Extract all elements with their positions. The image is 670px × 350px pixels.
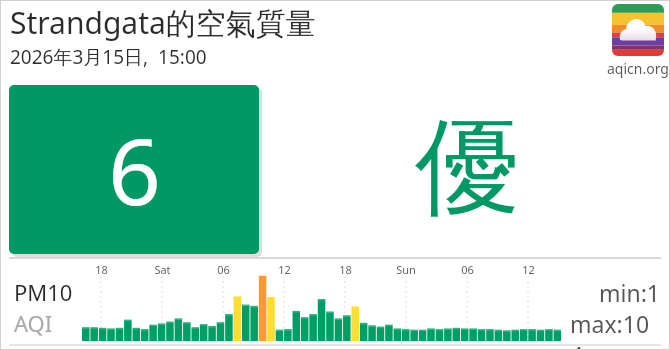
button[interactable]: PM10 AQI history chart — [0, 0, 670, 350]
staticText: 12 — [278, 262, 291, 277]
staticText: AQI — [14, 308, 53, 338]
staticText: 6 — [108, 107, 161, 232]
staticText: max:104 — [570, 308, 660, 350]
staticText: Strandgata的空氣質量 — [10, 2, 316, 43]
staticText: 2026年3月15日, 15:00 — [10, 44, 207, 70]
staticText: 18 — [95, 262, 108, 277]
button[interactable]: aqicn.org — [607, 4, 669, 78]
staticText: min:1 — [599, 277, 660, 308]
staticText: aqicn.org — [607, 59, 669, 78]
staticText: 06 — [461, 262, 474, 277]
staticText: 12 — [522, 262, 535, 277]
button[interactable]: 6 — [9, 85, 259, 254]
staticText: 06 — [217, 262, 230, 277]
staticText: Sat — [154, 262, 171, 277]
staticText: Sun — [396, 262, 416, 277]
staticText: 18 — [339, 262, 352, 277]
staticText: 優 — [415, 102, 520, 234]
staticText: PM10 — [14, 277, 73, 307]
